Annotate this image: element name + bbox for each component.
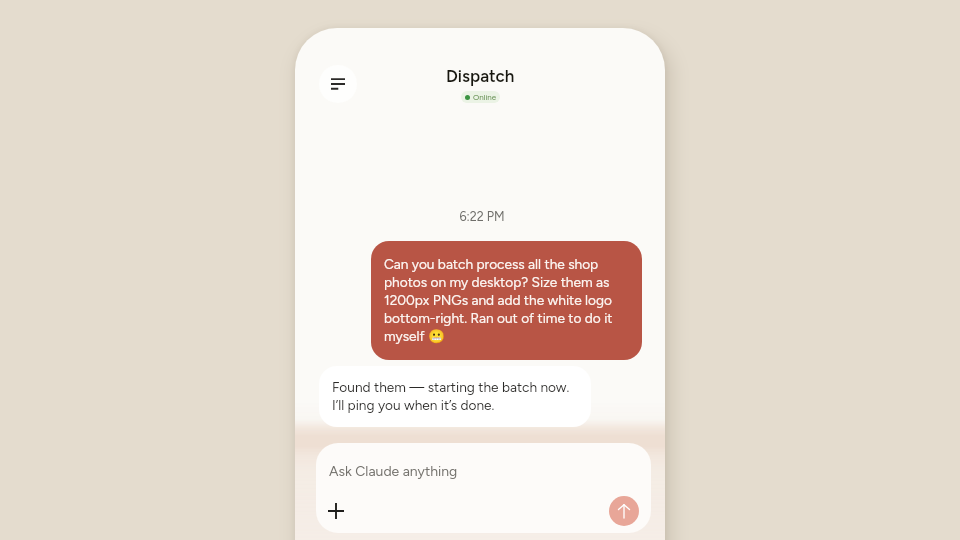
staticText: Dispatch <box>446 66 515 86</box>
button[interactable]: Can you batch process all the shop photo… <box>371 241 642 360</box>
button[interactable]: Add attachment <box>319 494 353 528</box>
staticText: Can you batch process all the shop photo… <box>384 256 630 345</box>
button[interactable]: Found them — starting the batch now. I’l… <box>319 366 591 427</box>
button[interactable]: Menu <box>319 65 357 103</box>
staticText: Found them — starting the batch now. I’l… <box>332 379 570 414</box>
staticText: Ask Claude anything <box>329 463 458 480</box>
staticText: 6:22 PM <box>297 209 665 224</box>
staticText: Online <box>473 92 497 102</box>
button[interactable]: Send <box>609 496 639 526</box>
